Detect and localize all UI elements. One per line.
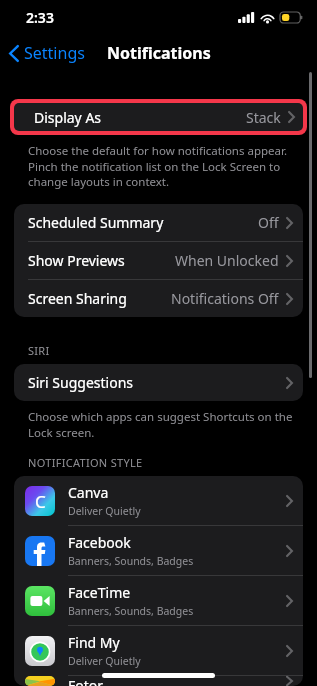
button[interactable]: FaceTime	[14, 575, 303, 625]
staticText: Deliver Quietly	[68, 654, 141, 668]
staticText: Screen Sharing	[28, 289, 127, 308]
staticText: Notifications	[107, 42, 211, 64]
staticText: Off	[258, 213, 279, 232]
button[interactable]: Show Previews	[14, 241, 303, 279]
button[interactable]: Siri Suggestions	[14, 364, 303, 401]
staticText: Deliver Quietly	[68, 504, 141, 518]
staticText: Find My	[68, 633, 120, 652]
staticText: Facebook	[68, 533, 131, 552]
staticText: Settings	[24, 42, 85, 64]
button[interactable]: Scheduled Summary	[14, 204, 303, 241]
staticText: When Unlocked	[175, 251, 279, 270]
button[interactable]: Fotor	[14, 675, 303, 686]
staticText: Choose which apps can suggest Shortcuts …	[28, 409, 297, 440]
button[interactable]: Facebook	[14, 525, 303, 575]
staticText: Notifications Off	[171, 289, 279, 308]
button[interactable]: C	[14, 476, 303, 525]
staticText: C	[35, 490, 46, 513]
staticText: Fotor	[68, 676, 104, 686]
staticText: Banners, Sounds, Badges	[68, 604, 194, 618]
button[interactable]: Settings	[0, 38, 93, 68]
staticText: FaceTime	[68, 583, 131, 602]
button[interactable]: Screen Sharing	[14, 279, 303, 317]
staticText: 2:33	[26, 8, 54, 27]
button[interactable]: Find My	[14, 625, 303, 675]
staticText: Siri Suggestions	[28, 373, 133, 392]
staticText: Canva	[68, 483, 109, 502]
staticText: Banners, Sounds, Badges	[68, 554, 194, 568]
staticText: NOTIFICATION STYLE	[28, 455, 143, 470]
staticText: Scheduled Summary	[28, 213, 164, 232]
staticText: Stack	[246, 108, 281, 127]
button[interactable]: Display As	[14, 103, 303, 131]
staticText: Display As	[34, 108, 102, 127]
staticText: SIRI	[28, 343, 50, 358]
staticText: Choose the default for how notifications…	[28, 143, 297, 189]
staticText: Show Previews	[28, 251, 125, 270]
